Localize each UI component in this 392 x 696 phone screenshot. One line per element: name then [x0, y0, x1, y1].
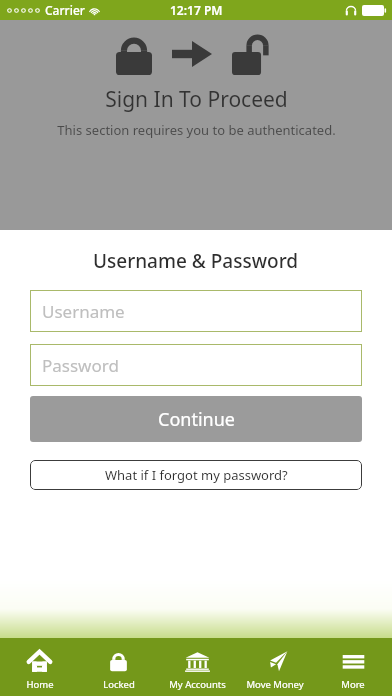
staticText: Carrier [45, 2, 85, 18]
staticText: Locked [103, 678, 135, 691]
button[interactable]: Password [30, 344, 362, 386]
staticText: More [341, 678, 365, 691]
staticText: What if I forgot my password? [105, 466, 288, 484]
button[interactable]: My Accounts [158, 638, 236, 696]
staticText: Home [26, 678, 54, 691]
button[interactable]: Home [0, 638, 79, 696]
button[interactable]: Locked [79, 638, 158, 696]
staticText: 12:17 PM [170, 2, 223, 18]
staticText: My Accounts [169, 678, 226, 691]
staticText: Username & Password [93, 248, 299, 274]
button[interactable]: More [314, 638, 392, 696]
button[interactable]: Continue [30, 396, 362, 442]
staticText: Sign In To Proceed [105, 85, 288, 114]
button[interactable]: What if I forgot my password? [30, 460, 362, 490]
staticText: Move Money [246, 678, 304, 691]
staticText: Password [42, 354, 119, 377]
button[interactable]: Move Money [236, 638, 314, 696]
staticText: This section requires you to be authenti… [57, 121, 336, 139]
staticText: Username [42, 300, 125, 323]
staticText: Continue [158, 407, 235, 432]
button[interactable]: Username [30, 290, 362, 332]
